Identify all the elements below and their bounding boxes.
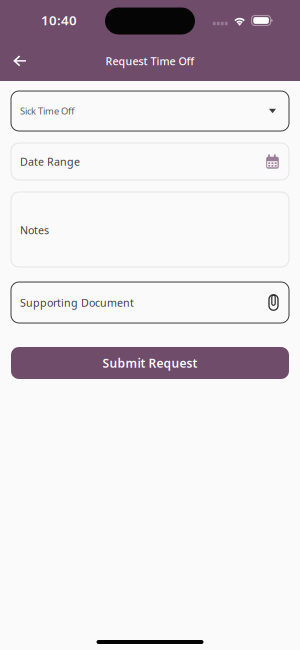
staticText: Sick Time Off: [20, 105, 74, 117]
button[interactable]: Sick Time Off: [11, 91, 289, 131]
staticText: Supporting Document: [20, 295, 134, 310]
staticText: 10:40: [41, 11, 77, 29]
button[interactable]: Supporting Document: [11, 282, 289, 323]
button[interactable]: Back: [0, 45, 40, 77]
staticText: Date Range: [20, 154, 80, 169]
staticText: Notes: [20, 223, 49, 237]
button[interactable]: Notes: [11, 192, 289, 267]
staticText: Submit Request: [102, 355, 197, 371]
staticText: Request Time Off: [105, 54, 194, 68]
button[interactable]: Submit Request: [11, 347, 289, 379]
button[interactable]: Date Range: [11, 143, 289, 180]
